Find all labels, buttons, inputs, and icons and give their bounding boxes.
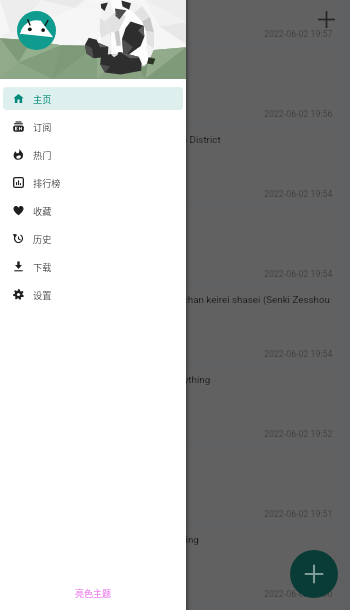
button[interactable]: Add feed [311,4,341,34]
staticText: 亮色主题 [75,587,112,600]
button[interactable]: [Nekomoe kissaten] Kumichou Musum Distri… [12,131,338,202]
staticText: 2022-06-02 19:50 [264,589,333,599]
staticText: 主页 [33,92,52,105]
staticText: 下载 [33,260,52,273]
button[interactable]: 主页 [3,87,183,110]
button[interactable]: [Nekomoe kissaten] Kawaii Shikimori-chan… [12,291,338,362]
staticText: [Nekomoe kissaten] Shijou Saiky Morning [19,534,199,545]
staticText: [Nekomoe kissaten] Kumichou Musum Distri… [19,134,221,145]
staticText: 收藏 [33,204,52,217]
button[interactable]: 热门 [3,143,183,166]
staticText: [Nekomoe kissaten] Kaguya Ultra everythi… [19,374,211,385]
button[interactable]: 收藏 [3,199,183,222]
button[interactable]: 2022-06-02 19:51 [12,451,338,522]
button[interactable]: [Nekomoe kissaten] Shijou Saiky Morning [12,531,338,602]
button[interactable]: [Nekomoe kissaten] Kaguya Ultra everythi… [12,371,338,442]
button[interactable]: 下载 [3,255,183,278]
staticText: [Nekomoe kissaten] Kawaii Shikimori-chan… [19,294,330,305]
staticText: 设置 [33,288,52,301]
button[interactable]: 2022-06-02 19:56 [12,51,338,122]
button[interactable]: 2022-06-02 19:54 [12,211,338,282]
staticText: 2022-06-02 19:52 [264,429,333,439]
staticText: 2022-06-02 19:54 [264,269,333,279]
staticText: 热门 [33,148,52,161]
button[interactable]: 排行榜 [3,171,183,194]
button[interactable]: Add [290,550,338,598]
staticText: 历史 [33,232,52,245]
button[interactable]: 亮色主题 [0,576,186,610]
staticText: 订阅 [33,120,52,133]
button[interactable]: 设置 [3,283,183,306]
staticText: 2022-06-02 19:57 [264,29,333,39]
staticText: 2022-06-02 19:54 [264,189,333,199]
staticText: 2022-06-02 19:54 [264,349,333,359]
staticText: 排行榜 [33,176,61,189]
button[interactable]: 订阅 [3,115,183,138]
button[interactable]: 历史 [3,227,183,250]
button[interactable]: 2022-06-02 19:57 [12,0,338,42]
staticText: 2022-06-02 19:51 [264,509,333,519]
staticText: 2022-06-02 19:56 [264,109,333,119]
